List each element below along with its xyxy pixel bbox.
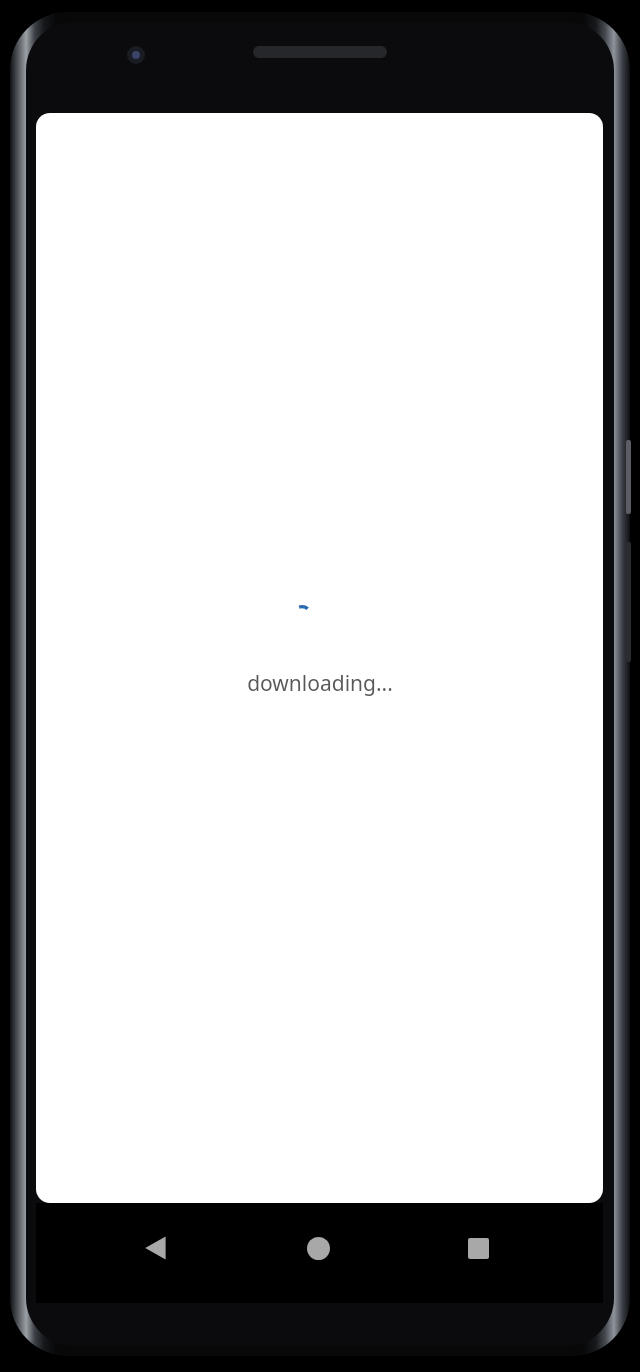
button[interactable]: Recent apps [446, 1216, 510, 1280]
staticText: downloading... [247, 669, 393, 698]
other: Loading [291, 605, 313, 627]
button[interactable]: Back [124, 1216, 188, 1280]
button[interactable]: Home [286, 1216, 350, 1280]
